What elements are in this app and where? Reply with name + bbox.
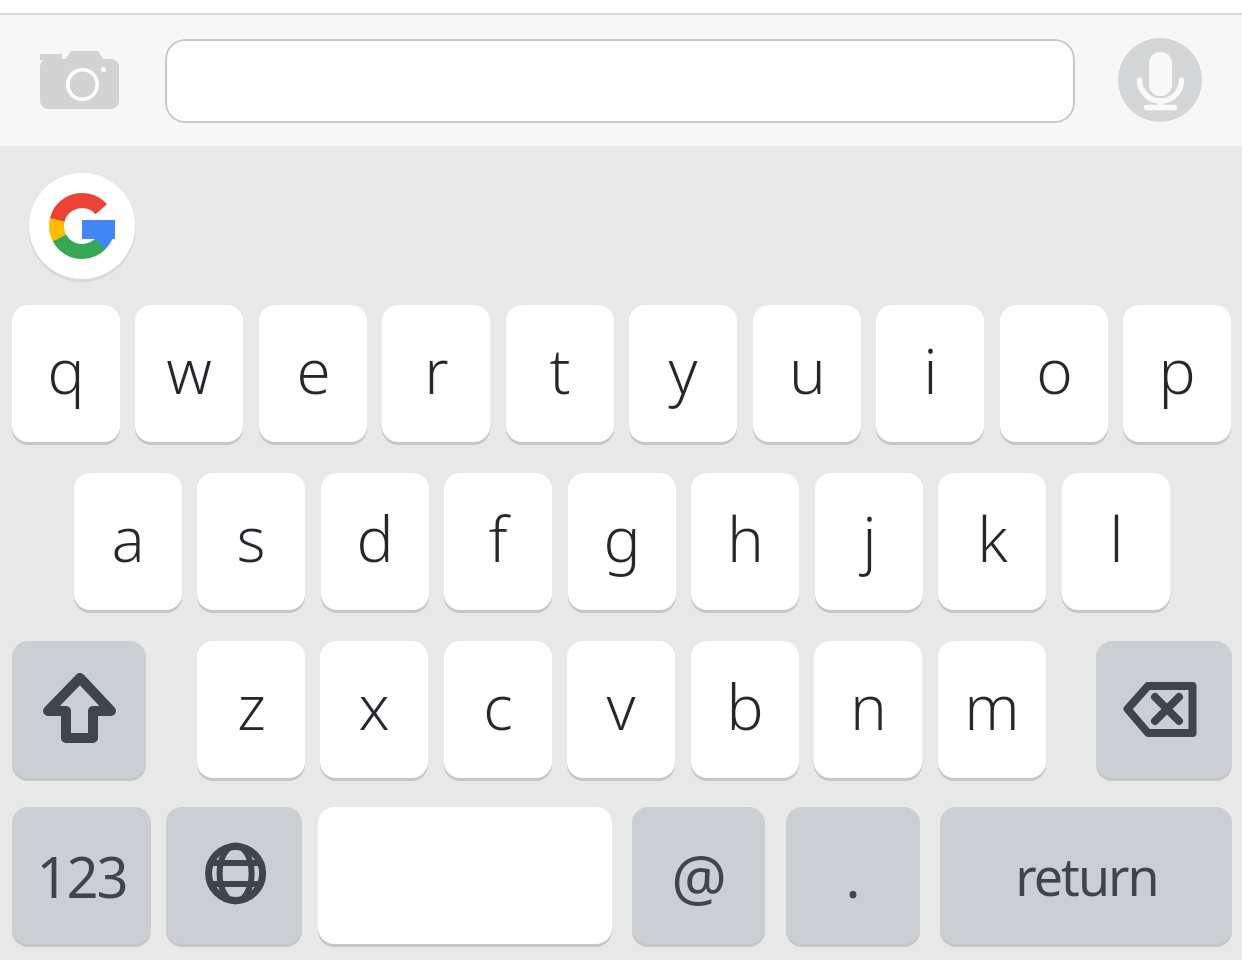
button[interactable]: .	[786, 807, 920, 944]
button[interactable]	[1096, 641, 1232, 778]
staticText: f	[488, 496, 508, 580]
staticText: @	[671, 834, 727, 918]
staticText: o	[1036, 328, 1073, 412]
button[interactable]: a	[74, 473, 182, 610]
staticText: c	[483, 664, 513, 748]
staticText: p	[1158, 328, 1196, 412]
staticText: k	[977, 496, 1008, 580]
button[interactable]: return	[940, 807, 1232, 944]
button[interactable]: v	[567, 641, 675, 778]
button[interactable]: o	[1000, 305, 1108, 442]
staticText: .	[845, 838, 861, 914]
staticText: w	[166, 328, 212, 412]
button[interactable]: p	[1123, 305, 1231, 442]
button[interactable]: i	[876, 305, 984, 442]
button[interactable]: k	[938, 473, 1046, 610]
staticText: a	[111, 496, 145, 580]
staticText: l	[1109, 496, 1124, 580]
staticText: 123	[36, 838, 127, 914]
button[interactable]: s	[197, 473, 305, 610]
button[interactable]: c	[444, 641, 552, 778]
staticText: i	[923, 328, 938, 412]
button[interactable]: e	[259, 305, 367, 442]
button[interactable]: w	[135, 305, 243, 442]
button[interactable]: t	[506, 305, 614, 442]
button[interactable]: d	[321, 473, 429, 610]
button[interactable]	[12, 641, 146, 778]
button[interactable]	[1118, 38, 1202, 122]
staticText: e	[296, 328, 331, 412]
button[interactable]	[165, 39, 1075, 123]
button[interactable]: y	[629, 305, 737, 442]
button[interactable]	[27, 171, 137, 281]
button[interactable]: l	[1062, 473, 1170, 610]
button[interactable]: g	[568, 473, 676, 610]
button[interactable]: n	[814, 641, 922, 778]
button[interactable]: m	[938, 641, 1046, 778]
button[interactable]: 123	[12, 807, 151, 944]
staticText: u	[789, 328, 826, 412]
staticText: d	[356, 496, 394, 580]
button[interactable]: q	[12, 305, 120, 442]
staticText: m	[964, 664, 1020, 748]
button[interactable]: x	[320, 641, 428, 778]
button[interactable]: u	[753, 305, 861, 442]
staticText: q	[47, 328, 85, 412]
button[interactable]	[166, 807, 302, 944]
staticText: t	[549, 328, 571, 412]
button[interactable]: z	[197, 641, 305, 778]
staticText: r	[424, 328, 449, 412]
button[interactable]: h	[691, 473, 799, 610]
button[interactable]: j	[815, 473, 923, 610]
staticText: s	[236, 496, 266, 580]
staticText: b	[726, 664, 764, 748]
staticText: y	[668, 328, 698, 412]
staticText: return	[1015, 840, 1158, 911]
staticText: v	[606, 664, 636, 748]
button[interactable]: f	[444, 473, 552, 610]
staticText: n	[850, 664, 887, 748]
staticText: j	[862, 496, 877, 580]
staticText: x	[358, 664, 390, 748]
button[interactable]: b	[691, 641, 799, 778]
button[interactable]: @	[632, 807, 765, 944]
button[interactable]: r	[382, 305, 490, 442]
staticText: g	[603, 496, 641, 580]
staticText: z	[237, 664, 266, 748]
staticText: h	[727, 496, 764, 580]
